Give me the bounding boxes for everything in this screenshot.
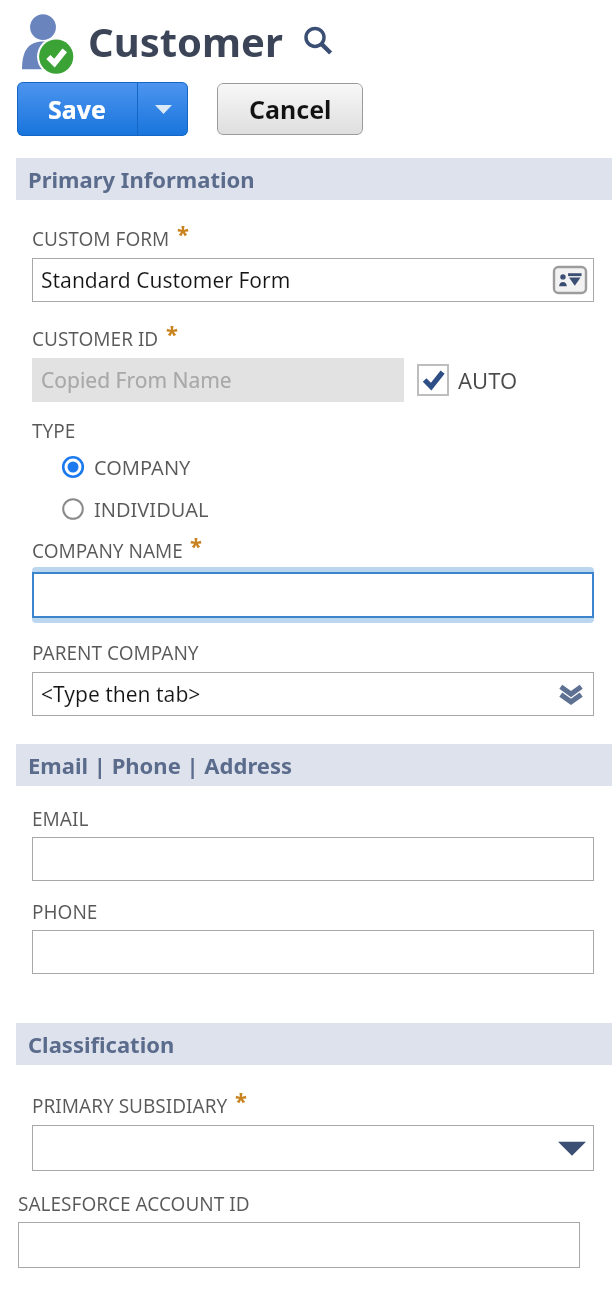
staticText: TYPE (32, 418, 76, 444)
button[interactable]: Parent company (32, 672, 594, 716)
button[interactable] (32, 572, 594, 618)
button[interactable]: COMPANY (0, 446, 612, 488)
staticText: CUSTOM FORM (32, 226, 170, 252)
staticText: CUSTOMER ID (32, 326, 159, 352)
staticText: COMPANY (94, 454, 191, 481)
button[interactable]: Email (32, 837, 594, 881)
staticText: * (190, 530, 202, 560)
button[interactable]: Custom form (32, 258, 594, 302)
staticText: Standard Customer Form (41, 266, 291, 295)
staticText: <Type then tab> (41, 680, 201, 709)
staticText: Copied From Name (41, 366, 232, 395)
button[interactable]: Email | Phone | Address (16, 744, 612, 786)
button[interactable]: Save (17, 82, 137, 136)
staticText: * (177, 218, 189, 248)
staticText: * (166, 318, 178, 348)
button[interactable]: Primary Information (16, 158, 612, 200)
staticText: INDIVIDUAL (94, 496, 209, 523)
staticText: Cancel (249, 92, 332, 126)
staticText: Customer (88, 14, 283, 68)
button[interactable]: More save options (138, 82, 188, 136)
button[interactable]: AUTO (418, 358, 518, 402)
staticText: EMAIL (32, 806, 89, 832)
staticText: Email | Phone | Address (28, 750, 293, 780)
staticText: Classification (28, 1029, 175, 1059)
staticText: * (235, 1085, 247, 1115)
staticText: Save (48, 92, 106, 126)
staticText: PRIMARY SUBSIDIARY (32, 1093, 228, 1119)
staticText: COMPANY NAME (32, 538, 183, 564)
button[interactable]: Search (299, 22, 337, 60)
staticText: Primary Information (28, 164, 255, 194)
button[interactable]: INDIVIDUAL (0, 488, 612, 530)
button[interactable]: Salesforce account ID (18, 1222, 580, 1268)
button[interactable]: Phone (32, 930, 594, 974)
staticText: AUTO (458, 365, 518, 395)
button[interactable]: Primary subsidiary (32, 1125, 594, 1171)
staticText: PHONE (32, 899, 98, 925)
button[interactable]: Classification (16, 1023, 612, 1065)
button[interactable]: Copied From Name (32, 358, 404, 402)
button[interactable]: Cancel (217, 83, 363, 135)
staticText: PARENT COMPANY (32, 640, 199, 666)
staticText: SALESFORCE ACCOUNT ID (18, 1191, 250, 1217)
